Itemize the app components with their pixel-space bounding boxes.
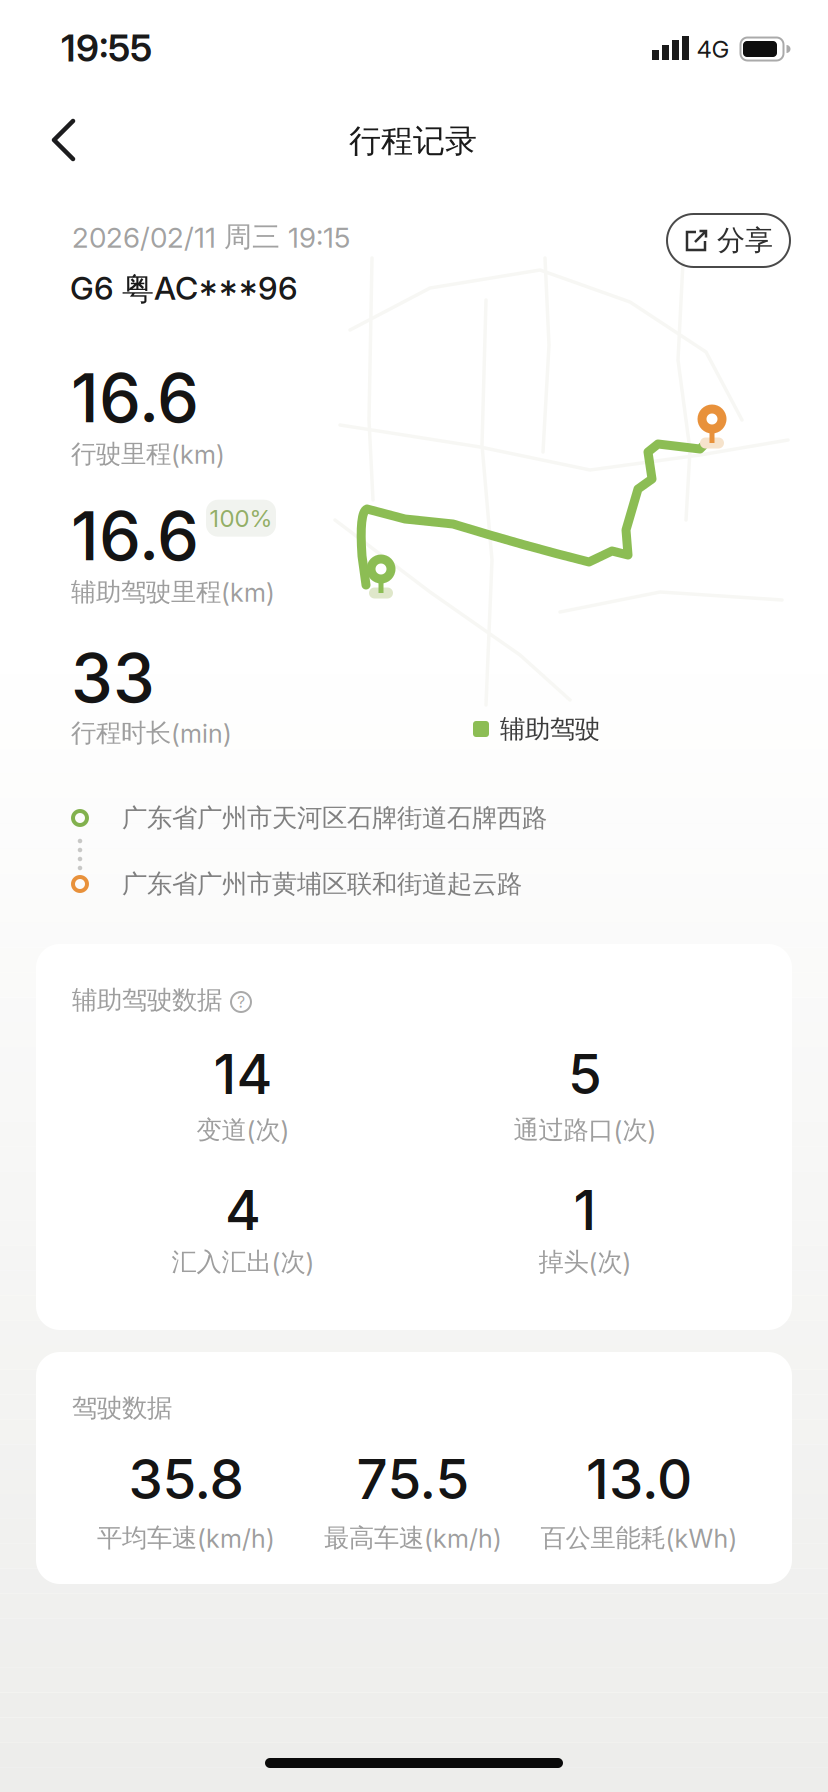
staticText: 100% bbox=[209, 504, 272, 532]
button[interactable]: Back bbox=[40, 115, 90, 165]
button[interactable]: 辅助驾驶数据说明 bbox=[228, 989, 254, 1015]
staticText: 4 bbox=[225, 1178, 261, 1242]
staticText: 驾驶数据 bbox=[72, 1392, 172, 1423]
staticText: 广东省广州市天河区石牌街道石牌西路 bbox=[122, 802, 547, 833]
staticText: 平均车速(km/h) bbox=[97, 1522, 275, 1553]
staticText: 行驶里程(km) bbox=[71, 438, 225, 469]
staticText: 75.5 bbox=[356, 1447, 469, 1511]
staticText: 行程记录 bbox=[349, 121, 477, 161]
staticText: G6 粤AC***96 bbox=[70, 269, 298, 309]
staticText: 汇入汇出(次) bbox=[171, 1246, 314, 1277]
staticText: 16.6 bbox=[71, 497, 199, 575]
staticText: 19:55 bbox=[61, 26, 152, 70]
staticText: 掉头(次) bbox=[538, 1246, 631, 1277]
button[interactable]: 分享 bbox=[667, 214, 790, 267]
staticText: ? bbox=[237, 993, 245, 1011]
staticText: 13.0 bbox=[586, 1447, 692, 1511]
staticText: 辅助驾驶里程(km) bbox=[71, 576, 275, 607]
staticText: 百公里能耗(kWh) bbox=[540, 1522, 737, 1553]
staticText: 辅助驾驶数据 bbox=[72, 984, 222, 1015]
staticText: 分享 bbox=[717, 223, 773, 258]
staticText: 2026/02/11 周三 19:15 bbox=[72, 220, 350, 254]
staticText: 行程时长(min) bbox=[71, 717, 232, 748]
staticText: 1 bbox=[573, 1178, 596, 1242]
staticText: 16.6 bbox=[71, 359, 199, 437]
staticText: 35.8 bbox=[128, 1447, 243, 1511]
staticText: 广东省广州市黄埔区联和街道起云路 bbox=[122, 868, 522, 899]
staticText: 5 bbox=[568, 1042, 602, 1106]
staticText: 14 bbox=[213, 1042, 272, 1106]
staticText: 4G bbox=[696, 35, 729, 63]
staticText: 33 bbox=[71, 639, 155, 717]
staticText: 通过路口(次) bbox=[513, 1114, 656, 1145]
staticText: 辅助驾驶 bbox=[500, 713, 600, 744]
staticText: 变道(次) bbox=[196, 1114, 289, 1145]
staticText: 最高车速(km/h) bbox=[324, 1522, 502, 1553]
